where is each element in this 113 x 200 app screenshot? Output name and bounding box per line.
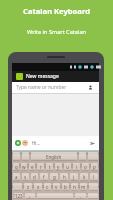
button[interactable]: s — [22, 173, 29, 181]
staticText: English — [46, 154, 62, 160]
button[interactable]: . — [75, 193, 86, 199]
other: Send — [89, 140, 96, 147]
button[interactable]: e — [29, 163, 35, 171]
staticText: Type name or number — [16, 84, 67, 91]
staticText: j — [73, 174, 75, 180]
staticText: c — [46, 184, 49, 190]
button[interactable] — [13, 152, 20, 161]
button[interactable] — [37, 193, 73, 199]
staticText: o — [84, 164, 87, 170]
button[interactable]: r — [37, 163, 44, 171]
button[interactable]: b — [62, 183, 69, 191]
other: Attach — [15, 140, 21, 146]
button[interactable]: o — [82, 163, 89, 171]
button[interactable]: d — [31, 173, 38, 181]
staticText: b — [64, 184, 67, 190]
staticText: ?123 — [13, 193, 23, 199]
staticText: v — [55, 184, 58, 190]
staticText: u — [66, 164, 69, 170]
button[interactable]: h — [60, 173, 68, 181]
button[interactable] — [88, 152, 98, 161]
button[interactable] — [13, 183, 22, 191]
button[interactable] — [79, 152, 86, 161]
staticText: f — [43, 174, 45, 180]
button[interactable]: f — [40, 173, 48, 181]
staticText: Write in Smart Catalan — [0, 28, 113, 36]
staticText: n — [73, 184, 76, 190]
button[interactable]: k — [80, 173, 88, 181]
staticText: r — [40, 164, 42, 170]
button[interactable]: n — [71, 183, 78, 191]
staticText: s — [24, 174, 27, 180]
staticText: q — [15, 164, 18, 170]
staticText: , — [29, 193, 31, 199]
staticText: l — [93, 174, 95, 180]
button[interactable]: p — [91, 163, 98, 171]
button[interactable]: t — [46, 163, 53, 171]
staticText: a — [15, 174, 18, 180]
button[interactable]: m — [80, 183, 87, 191]
button[interactable]: , — [25, 193, 35, 199]
staticText: e — [31, 164, 34, 170]
button[interactable]: w — [21, 163, 27, 171]
staticText: w — [22, 164, 26, 170]
button[interactable] — [88, 193, 98, 199]
button[interactable] — [22, 152, 29, 161]
staticText: m — [81, 184, 86, 190]
staticText: p — [93, 164, 96, 170]
other: Contacts — [88, 85, 93, 90]
other: Emoji — [22, 140, 28, 146]
staticText: g — [53, 174, 56, 180]
staticText: i — [76, 164, 78, 170]
button[interactable]: u — [64, 163, 71, 171]
button[interactable]: z — [24, 183, 32, 191]
button[interactable]: English — [31, 152, 77, 161]
button[interactable]: x — [34, 183, 42, 191]
staticText: d — [33, 174, 36, 180]
button[interactable]: g — [50, 173, 58, 181]
staticText: Catalan Keyboard — [0, 6, 113, 16]
button[interactable]: q — [13, 163, 19, 171]
staticText: New message — [26, 73, 59, 80]
staticText: Hi... — [32, 140, 41, 146]
button[interactable]: v — [53, 183, 60, 191]
staticText: z — [27, 184, 30, 190]
button[interactable]: y — [55, 163, 62, 171]
staticText: x — [37, 184, 40, 190]
button[interactable]: l — [90, 173, 98, 181]
button[interactable]: ?123 — [13, 193, 23, 199]
button[interactable]: j — [70, 173, 78, 181]
button[interactable]: c — [44, 183, 51, 191]
button[interactable]: i — [73, 163, 80, 171]
button[interactable]: a — [13, 173, 20, 181]
staticText: . — [80, 193, 82, 199]
staticText: t — [49, 164, 51, 170]
staticText: k — [83, 174, 86, 180]
staticText: h — [63, 174, 66, 180]
staticText: y — [57, 164, 60, 170]
button[interactable] — [89, 183, 98, 191]
